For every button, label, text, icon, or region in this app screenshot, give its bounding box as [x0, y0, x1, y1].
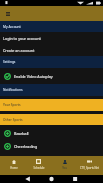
button[interactable]: Create an account [0, 44, 103, 56]
staticText: Schedule [33, 166, 45, 170]
staticText: Enable Video Autoplay [14, 74, 53, 79]
button[interactable]: Open navigation menu [1, 7, 14, 20]
button[interactable]: Schedule [26, 156, 51, 175]
button[interactable]: Notifications [0, 84, 103, 96]
button[interactable]: You [52, 156, 77, 175]
staticText: Settings [3, 60, 16, 64]
staticText: You [62, 166, 67, 170]
staticText: Other Sports [3, 118, 23, 122]
button[interactable]: Enable Video Autoplay [0, 68, 103, 84]
button[interactable]: Cheerleading [0, 140, 103, 153]
button[interactable]: Baseball [0, 127, 103, 140]
button[interactable]: CTV, Sports Net [77, 156, 102, 175]
staticText: Create an account [3, 48, 35, 53]
staticText: Cheerleading [14, 144, 38, 149]
button[interactable]: Home [1, 156, 26, 175]
staticText: Baseball [14, 131, 29, 136]
staticText: Login to your account [3, 36, 41, 41]
staticText: CTV, Sports Net [80, 166, 99, 170]
staticText: My Account [3, 25, 21, 29]
staticText: Your Sports [3, 103, 21, 107]
button[interactable]: My Account [0, 21, 103, 32]
staticText: Home [10, 166, 18, 170]
button[interactable]: Settings [0, 56, 103, 68]
button[interactable]: Other Sports [0, 114, 103, 125]
button[interactable]: Your Sports [0, 99, 103, 111]
staticText: Notifications [3, 88, 23, 92]
button[interactable]: Login to your account [0, 32, 103, 44]
